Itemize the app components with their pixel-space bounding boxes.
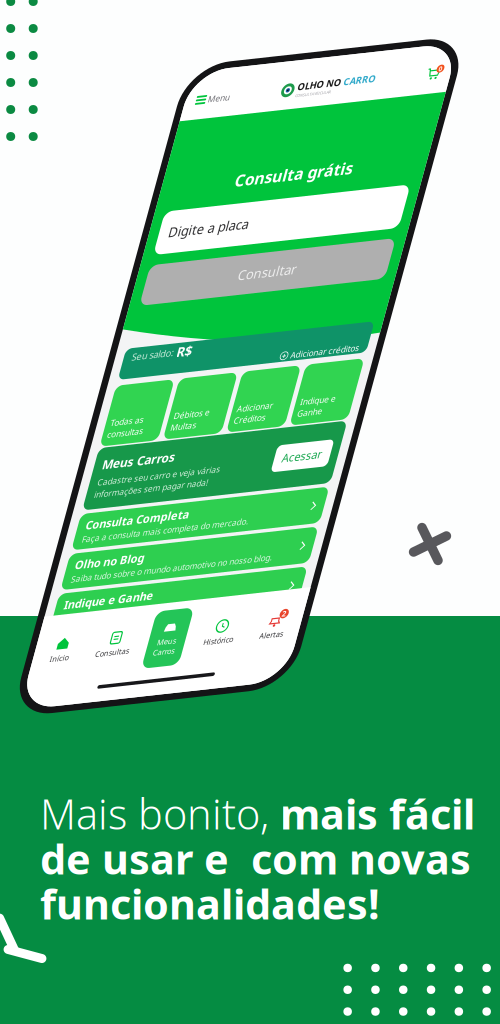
staticText: consultas (154, 458, 207, 474)
staticText: Acessar (428, 516, 487, 538)
staticText: Consultar (286, 248, 372, 272)
staticText: Olho no Blog (159, 636, 261, 657)
staticText: Multas (247, 458, 285, 474)
staticText: de usar e com novas (40, 831, 471, 886)
button[interactable]: Meus (301, 725, 356, 804)
staticText: Saiba tudo sobre o mundo automotivo no n… (159, 658, 454, 674)
staticText: Cadastre seu carro e veja várias (159, 525, 339, 540)
staticText: Indique e Ganhe (159, 691, 290, 712)
staticText: Todas as (154, 442, 203, 458)
button[interactable]: Débitos e (240, 398, 326, 482)
staticText: Débitos e (247, 442, 300, 458)
staticText: Digite a placa (163, 176, 281, 200)
button[interactable]: Todas as (147, 398, 233, 482)
button[interactable]: Consultar (149, 232, 500, 288)
staticText: Meus Carros (159, 497, 266, 520)
button[interactable]: Meus Carros (147, 484, 500, 570)
staticText: Adicionar (339, 442, 392, 458)
staticText: Consulta Completa (159, 581, 311, 602)
staticText: Mais bonito, mais fácil (40, 786, 475, 841)
button[interactable]: Adicionar (332, 398, 418, 482)
staticText: Créditos (339, 458, 386, 474)
staticText: informações sem pagar nada! (159, 541, 326, 557)
button[interactable]: Consulta Completa (147, 575, 500, 625)
staticText: Seu saldo: (159, 351, 221, 368)
button[interactable]: Indique e Ganhe (147, 685, 500, 735)
staticText: Faça a consulta mais completa do mercado… (159, 603, 403, 619)
staticText: R$ (225, 347, 248, 372)
staticText: Consulta grátis (242, 110, 415, 140)
staticText: funcionalidades! (40, 876, 380, 931)
button[interactable]: Olho no Blog (147, 630, 500, 680)
